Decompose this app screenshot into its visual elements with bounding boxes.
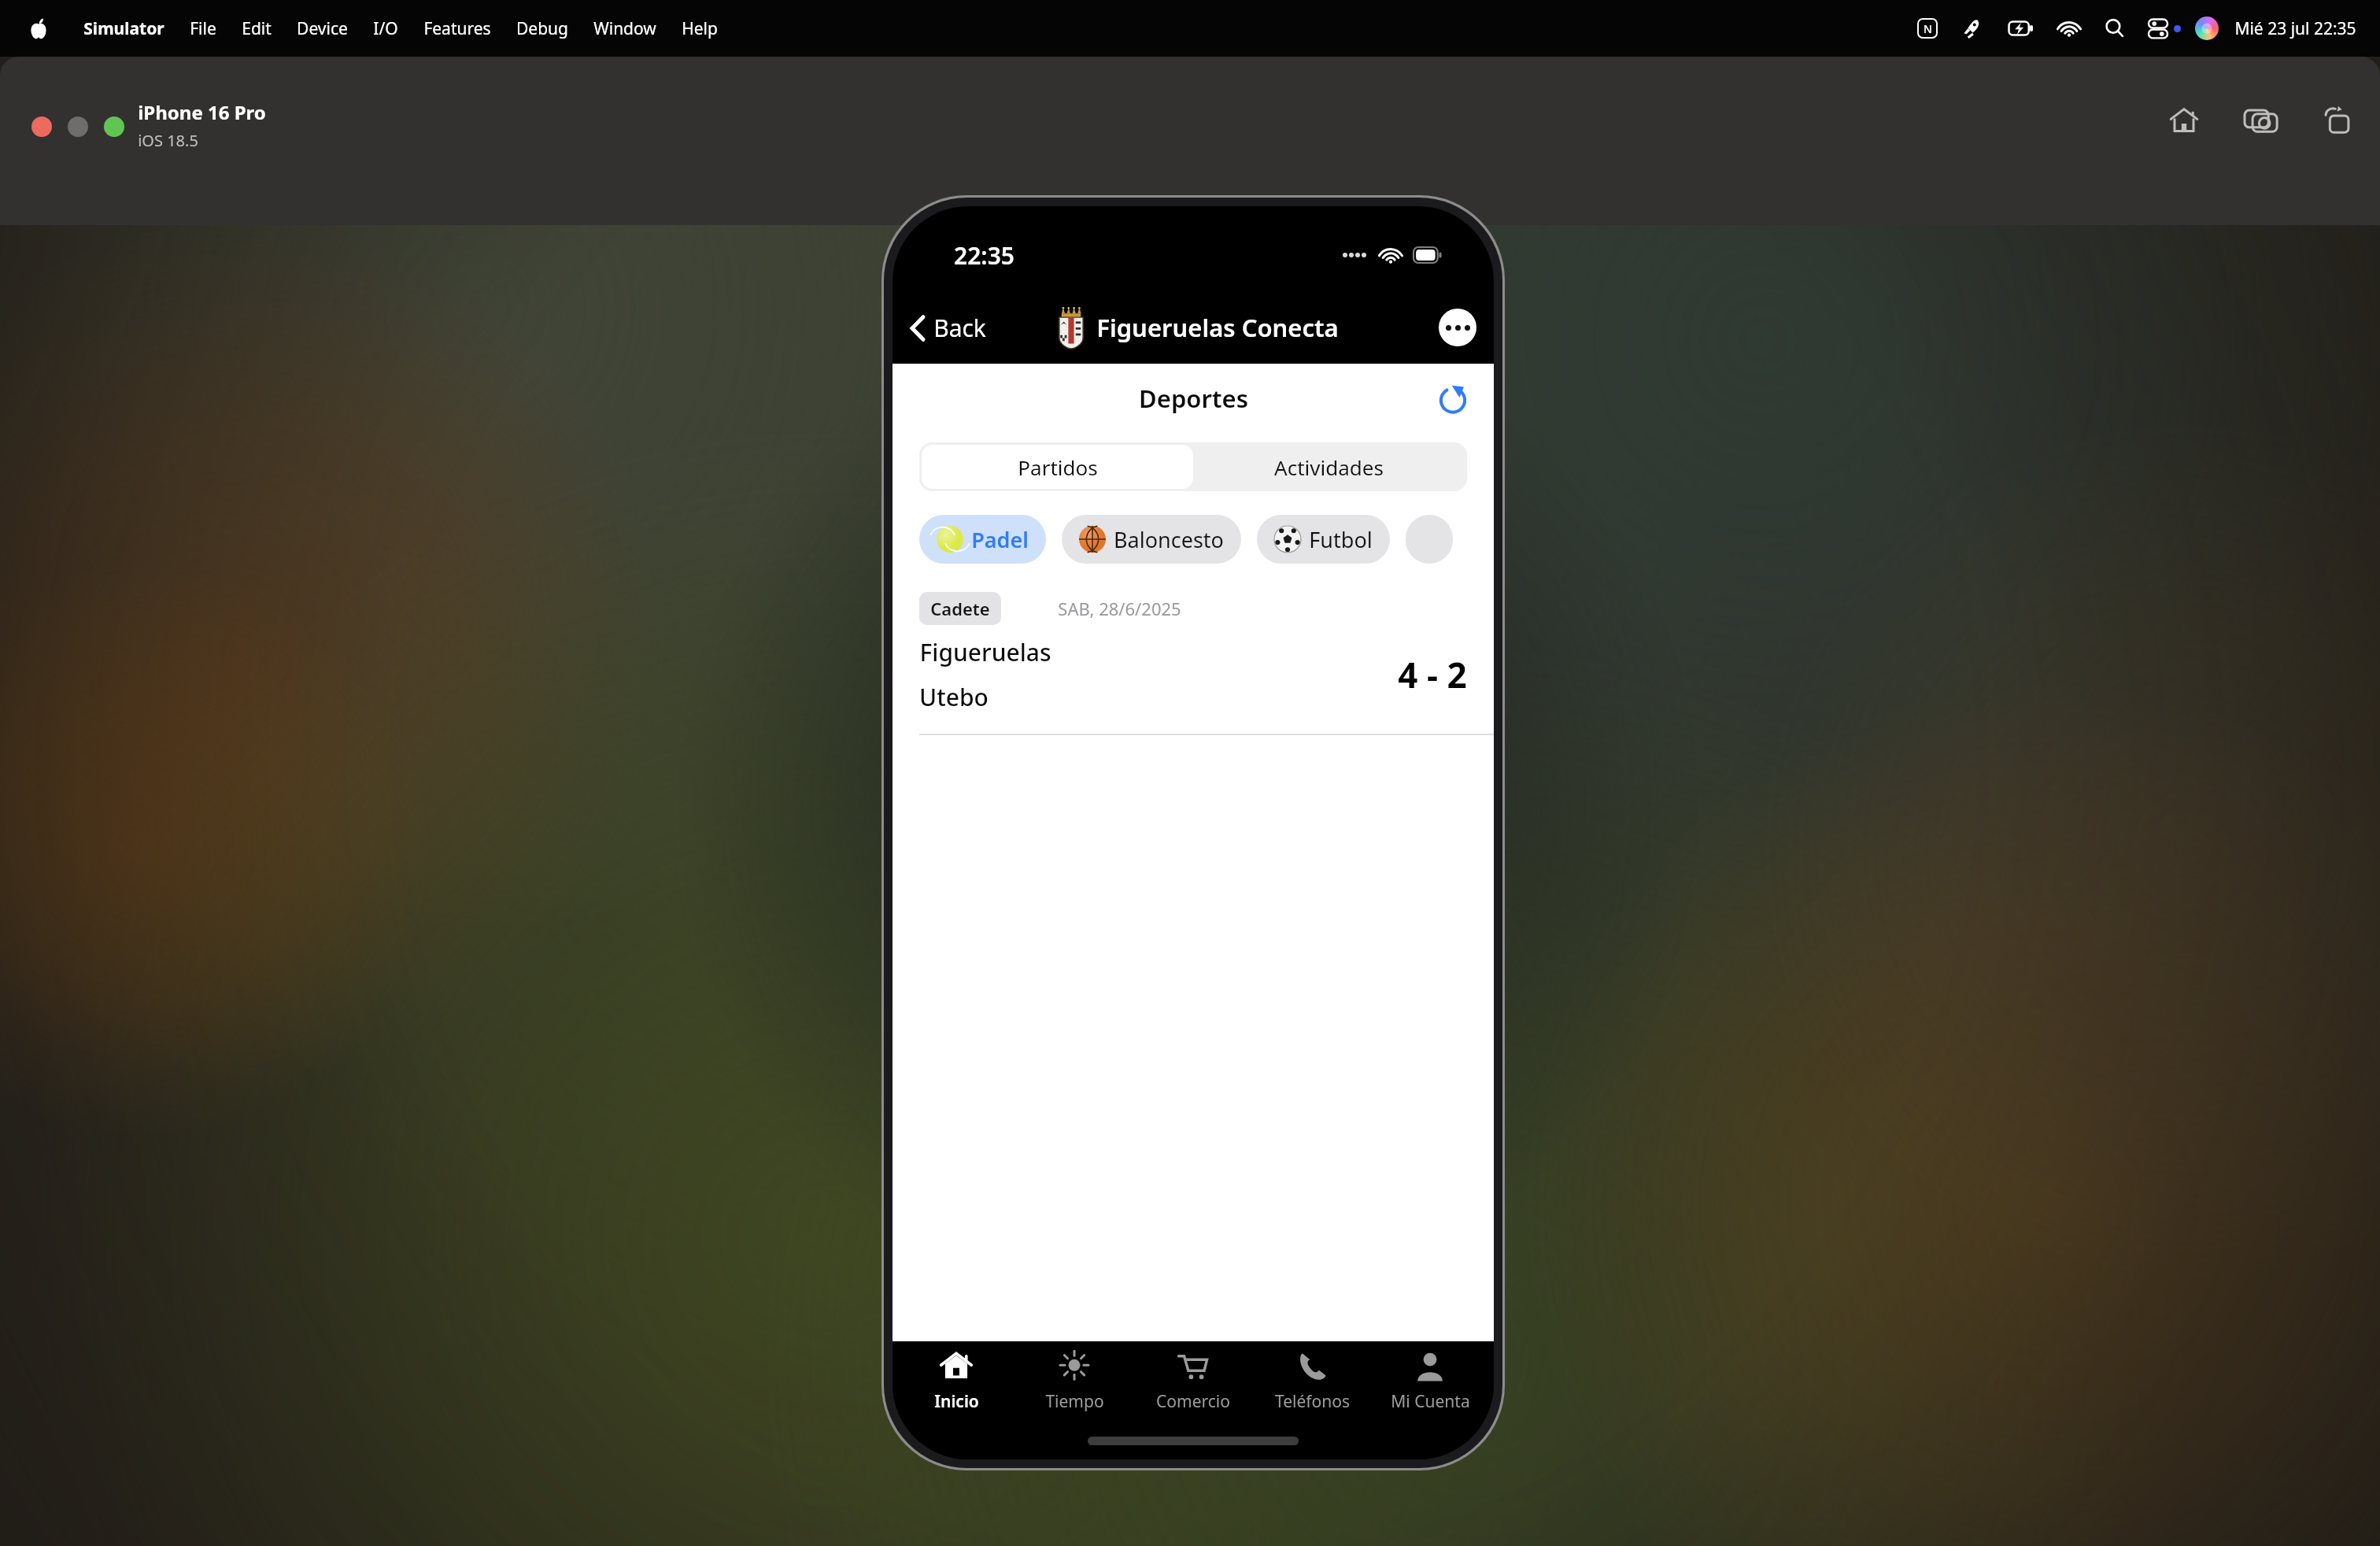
- staticText: Deportes: [1139, 382, 1248, 415]
- button[interactable]: Actividades: [1193, 445, 1465, 489]
- button[interactable]: Device: [284, 14, 360, 43]
- button[interactable]: Screenshot: [2241, 101, 2281, 140]
- button[interactable]: Debug: [504, 14, 581, 43]
- button[interactable]: [1406, 515, 1453, 564]
- staticText: Actividades: [1274, 453, 1384, 481]
- staticText: Features: [423, 17, 491, 40]
- staticText: 4 - 2: [1398, 651, 1467, 698]
- button[interactable]: [68, 117, 88, 137]
- staticText: 22:35: [954, 239, 1014, 272]
- button[interactable]: [31, 117, 52, 137]
- button[interactable]: Simulator: [71, 14, 177, 43]
- button[interactable]: Baloncesto: [1062, 515, 1241, 564]
- button[interactable]: Back: [904, 307, 992, 349]
- staticText: Simulator: [83, 17, 164, 40]
- staticText: Baloncesto: [1114, 525, 1224, 554]
- staticText: I/O: [373, 17, 398, 40]
- button[interactable]: Features: [411, 14, 504, 43]
- button[interactable]: Padel: [919, 515, 1046, 564]
- staticText: Comercio: [1156, 1390, 1230, 1413]
- button[interactable]: Home: [2164, 101, 2204, 140]
- button[interactable]: Help: [669, 14, 730, 43]
- staticText: iPhone 16 Pro: [138, 99, 266, 125]
- staticText: iOS 18.5: [138, 130, 198, 151]
- staticText: Tiempo: [1045, 1390, 1104, 1413]
- staticText: Mi Cuenta: [1391, 1390, 1470, 1413]
- button[interactable]: Partidos: [922, 445, 1193, 489]
- staticText: Debug: [516, 17, 568, 40]
- staticText: Cadete: [930, 597, 990, 620]
- button[interactable]: Edit: [229, 14, 284, 43]
- button[interactable]: Tiempo: [1019, 1349, 1129, 1413]
- staticText: N: [1924, 21, 1932, 36]
- staticText: Futbol: [1309, 525, 1373, 554]
- staticText: Edit: [242, 17, 272, 40]
- button[interactable]: Record: [2319, 101, 2358, 140]
- staticText: Figueruelas Conecta: [1096, 311, 1339, 344]
- staticText: Inicio: [934, 1390, 979, 1413]
- staticText: Partidos: [1018, 453, 1098, 481]
- button[interactable]: Comercio: [1138, 1349, 1248, 1413]
- button[interactable]: Inicio: [901, 1349, 1011, 1413]
- button[interactable]: Cadete: [893, 592, 1494, 735]
- staticText: Teléfonos: [1275, 1390, 1350, 1413]
- button[interactable]: More options: [1439, 309, 1476, 346]
- button[interactable]: I/O: [360, 14, 411, 43]
- button[interactable]: [104, 117, 124, 137]
- staticText: Help: [682, 17, 718, 40]
- staticText: Mié 23 jul 22:35: [2234, 17, 2356, 40]
- button[interactable]: File: [177, 14, 229, 43]
- button[interactable]: Refresh: [1431, 376, 1475, 420]
- button[interactable]: Mi Cuenta: [1375, 1349, 1485, 1413]
- staticText: Utebo: [919, 681, 989, 713]
- staticText: Figueruelas: [919, 636, 1051, 668]
- staticText: Padel: [971, 525, 1029, 554]
- staticText: Device: [297, 17, 348, 40]
- staticText: File: [190, 17, 216, 40]
- staticText: Window: [593, 17, 656, 40]
- button[interactable]: Window: [581, 14, 669, 43]
- staticText: Back: [933, 312, 986, 344]
- staticText: SAB, 28/6/2025: [1058, 597, 1181, 620]
- button[interactable]: Teléfonos: [1257, 1349, 1367, 1413]
- button[interactable]: Futbol: [1257, 515, 1390, 564]
